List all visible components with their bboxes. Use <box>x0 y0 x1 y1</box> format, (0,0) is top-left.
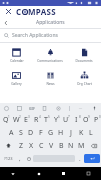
button[interactable]: Calendar <box>0 47 33 64</box>
button[interactable]: D <box>26 126 36 139</box>
staticText: 8 <box>79 115 81 119</box>
button[interactable]: Back <box>0 167 26 180</box>
button[interactable]: C <box>36 139 46 152</box>
staticText: Search Applications <box>12 32 58 39</box>
staticText: H <box>58 128 64 138</box>
button[interactable]: U <box>61 113 71 126</box>
staticText: 4 <box>39 115 41 119</box>
staticText: M <box>78 141 85 151</box>
staticText: 9 <box>88 115 90 119</box>
button[interactable]: G <box>46 126 56 139</box>
staticText: . <box>79 155 81 163</box>
button[interactable]: Documents <box>67 47 101 64</box>
staticText: U <box>63 115 69 125</box>
staticText: G <box>48 128 54 138</box>
button[interactable]: Org Chart <box>67 70 101 87</box>
button[interactable]: B <box>56 139 66 152</box>
staticText: Applications <box>36 19 65 26</box>
staticText: K <box>79 128 84 138</box>
button[interactable]: Z <box>16 139 26 152</box>
button[interactable]: Keyboard layout <box>76 167 101 180</box>
staticText: Communications <box>37 59 63 63</box>
button[interactable]: Search Applications <box>4 29 101 42</box>
button[interactable]: Clipboard <box>41 105 48 112</box>
button[interactable]: Voice input <box>91 105 98 112</box>
staticText: A <box>9 128 14 138</box>
staticText: News <box>46 82 55 86</box>
button[interactable]: J <box>66 126 76 139</box>
staticText: C <box>39 141 44 151</box>
button[interactable]: Q <box>0 113 11 126</box>
staticText: E <box>24 115 28 125</box>
staticText: Q <box>3 115 9 125</box>
button[interactable]: More <box>77 105 84 112</box>
staticText: L <box>89 128 93 138</box>
button[interactable]: Back <box>2 19 10 27</box>
button[interactable]: . <box>75 152 84 165</box>
button[interactable]: Y <box>51 113 61 126</box>
staticText: ?123 <box>4 156 13 161</box>
button[interactable]: L <box>86 126 96 139</box>
staticText: Y <box>54 115 58 125</box>
staticText: D <box>28 128 34 138</box>
staticText: I <box>75 115 78 125</box>
button[interactable]: K <box>76 126 86 139</box>
button[interactable]: News <box>33 70 67 87</box>
staticText: J <box>70 128 72 138</box>
staticText: P <box>94 115 99 125</box>
staticText: X <box>29 141 34 151</box>
staticText: Org Chart <box>77 82 92 86</box>
button[interactable]: Stickers <box>16 105 23 112</box>
button[interactable]: P <box>91 113 101 126</box>
staticText: 6 <box>58 115 60 119</box>
staticText: O <box>83 115 89 125</box>
button[interactable]: F <box>36 126 46 139</box>
button[interactable]: M <box>76 139 86 152</box>
button[interactable]: Emoji <box>24 152 33 165</box>
button[interactable]: A <box>6 126 16 139</box>
staticText: N <box>68 141 74 151</box>
button[interactable]: Settings <box>55 105 62 112</box>
button[interactable]: E <box>21 113 31 126</box>
staticText: 0 <box>99 115 101 119</box>
button[interactable]: O <box>81 113 91 126</box>
button[interactable]: Communications <box>33 47 67 64</box>
staticText: C <box>16 6 22 17</box>
button[interactable]: , <box>16 152 24 165</box>
button[interactable]: V <box>46 139 56 152</box>
staticText: 3 <box>28 115 30 119</box>
button[interactable]: Recent apps <box>51 167 76 180</box>
staticText: 2 <box>19 115 21 119</box>
button[interactable]: Backspace <box>86 139 101 152</box>
button[interactable]: Home <box>26 167 51 180</box>
button[interactable]: W <box>11 113 21 126</box>
staticText: W <box>13 115 20 125</box>
staticText: F <box>39 128 43 138</box>
button[interactable]: ?123 <box>1 152 16 165</box>
staticText: Gallery <box>11 82 22 86</box>
button[interactable]: Enter <box>84 154 100 163</box>
button[interactable]: I <box>71 113 81 126</box>
button[interactable]: Shift <box>0 139 16 152</box>
staticText: Documents <box>75 59 93 63</box>
staticText: V <box>49 141 54 151</box>
button[interactable]: Gallery <box>0 70 33 87</box>
staticText: Z <box>19 141 24 151</box>
button[interactable]: H <box>56 126 66 139</box>
staticText: GIF <box>29 106 35 111</box>
button[interactable]: X <box>26 139 36 152</box>
button[interactable]: T <box>41 113 51 126</box>
staticText: 5 <box>48 115 50 119</box>
staticText: 1 <box>8 115 10 119</box>
staticText: Calendar <box>10 59 24 63</box>
staticText: , <box>19 155 21 163</box>
button[interactable]: R <box>31 113 41 126</box>
button[interactable]: Close <box>4 7 13 16</box>
button[interactable]: N <box>66 139 76 152</box>
button[interactable]: S <box>16 126 26 139</box>
button[interactable]: Google <box>3 105 10 112</box>
staticText: MPASS <box>28 6 56 17</box>
staticText: S <box>19 128 23 138</box>
staticText: R <box>34 115 39 125</box>
